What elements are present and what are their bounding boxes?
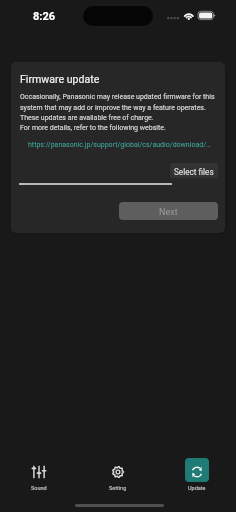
staticText: Setting: [109, 485, 127, 491]
button[interactable]: Update: [157, 452, 236, 496]
staticText: Update: [188, 485, 206, 491]
staticText: Sound: [31, 485, 47, 491]
button[interactable]: Sound: [0, 452, 78, 496]
staticText: Firmware update: [20, 73, 100, 85]
button[interactable]: https://panasonic.jp/support/global/cs/a…: [28, 141, 211, 149]
staticText: 8:26: [33, 10, 56, 23]
button[interactable]: Next: [119, 202, 218, 220]
staticText: Next: [159, 207, 178, 218]
staticText: Select files: [174, 167, 214, 177]
button[interactable]: Setting: [78, 452, 157, 496]
staticText: Occasionally, Panasonic may release upda…: [20, 93, 215, 132]
button[interactable]: Select files: [170, 163, 218, 178]
